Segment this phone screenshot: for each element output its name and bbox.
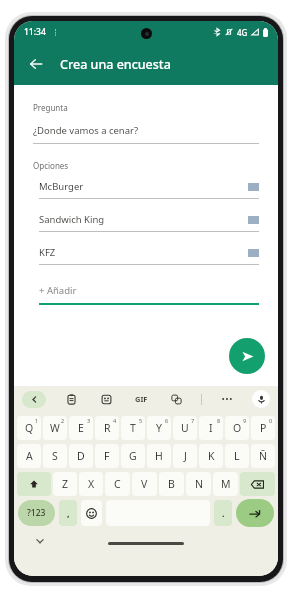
- button[interactable]: + Añadir: [39, 284, 259, 305]
- staticText: 4: [113, 417, 117, 424]
- button[interactable]: GIF: [131, 390, 151, 408]
- button[interactable]: D: [69, 444, 93, 468]
- button[interactable]: Sandwich King: [39, 213, 259, 246]
- button[interactable]: Mayúsculas: [17, 472, 51, 496]
- staticText: W: [50, 421, 60, 435]
- button[interactable]: T: [121, 416, 145, 440]
- staticText: 9: [243, 417, 247, 424]
- staticText: 7: [191, 417, 195, 424]
- button[interactable]: Traducir: [166, 390, 186, 408]
- staticText: X: [88, 477, 95, 491]
- staticText: 2: [61, 417, 65, 424]
- button[interactable]: S: [43, 444, 67, 468]
- staticText: 3: [87, 417, 91, 424]
- staticText: 0: [269, 417, 273, 424]
- button[interactable]: Ocultar teclado: [32, 533, 48, 549]
- staticText: Ñ: [259, 449, 267, 463]
- staticText: ,: [67, 507, 70, 519]
- button[interactable]: O: [225, 416, 249, 440]
- button[interactable]: Emoji: [81, 500, 102, 526]
- button[interactable]: McBurger: [39, 180, 259, 213]
- button[interactable]: V: [132, 472, 157, 496]
- button[interactable]: H: [147, 444, 171, 468]
- staticText: L: [234, 449, 240, 463]
- staticText: K: [208, 449, 215, 463]
- staticText: N: [195, 477, 203, 491]
- button[interactable]: F: [95, 444, 119, 468]
- button[interactable]: K: [199, 444, 223, 468]
- staticText: Crea una encuesta: [60, 56, 171, 73]
- button[interactable]: Atrás: [22, 50, 50, 78]
- button[interactable]: Dictado por voz: [252, 390, 270, 408]
- button[interactable]: Stickers: [96, 390, 116, 408]
- staticText: Opciones: [33, 160, 69, 171]
- staticText: O: [233, 421, 242, 435]
- staticText: R: [104, 421, 111, 435]
- staticText: 1: [35, 417, 39, 424]
- staticText: T: [130, 421, 136, 435]
- button[interactable]: Intro: [236, 499, 274, 527]
- staticText: S: [52, 449, 58, 463]
- staticText: C: [114, 477, 121, 491]
- staticText: P: [260, 421, 267, 435]
- button[interactable]: J: [173, 444, 197, 468]
- staticText: ¿Donde vamos a cenar?: [33, 124, 139, 137]
- button[interactable]: Atrás en barra: [22, 391, 46, 408]
- staticText: I: [209, 421, 213, 435]
- button[interactable]: X: [79, 472, 103, 496]
- staticText: GIF: [135, 394, 148, 404]
- button[interactable]: N: [186, 472, 211, 496]
- button[interactable]: R: [95, 416, 119, 440]
- button[interactable]: B: [159, 472, 184, 496]
- staticText: J: [184, 449, 187, 463]
- staticText: Y: [156, 421, 162, 435]
- staticText: Z: [62, 477, 69, 491]
- staticText: 5: [139, 417, 143, 424]
- staticText: .: [222, 507, 225, 519]
- staticText: McBurger: [39, 180, 84, 193]
- button[interactable]: I: [199, 416, 223, 440]
- staticText: 6: [165, 417, 169, 424]
- button[interactable]: Q: [17, 416, 41, 440]
- staticText: KFZ: [39, 246, 56, 259]
- button[interactable]: P: [251, 416, 275, 440]
- staticText: U: [181, 421, 189, 435]
- button[interactable]: Enviar encuesta: [229, 338, 265, 374]
- button[interactable]: Más opciones: [217, 390, 237, 408]
- button[interactable]: KFZ: [39, 246, 259, 279]
- staticText: E: [78, 421, 84, 435]
- button[interactable]: Z: [53, 472, 77, 496]
- staticText: A: [26, 449, 33, 463]
- button[interactable]: L: [225, 444, 249, 468]
- button[interactable]: Portapapeles: [61, 390, 81, 408]
- staticText: D: [77, 449, 85, 463]
- button[interactable]: Y: [147, 416, 171, 440]
- staticText: Sandwich King: [39, 213, 105, 226]
- staticText: 8: [217, 417, 221, 424]
- button[interactable]: Borrar: [240, 472, 275, 496]
- button[interactable]: U: [173, 416, 197, 440]
- button[interactable]: M: [213, 472, 238, 496]
- button[interactable]: W: [43, 416, 67, 440]
- button[interactable]: G: [121, 444, 145, 468]
- button[interactable]: ?123: [18, 500, 55, 526]
- button[interactable]: A: [17, 444, 41, 468]
- button[interactable]: ,: [59, 500, 77, 526]
- staticText: ?123: [27, 507, 46, 519]
- staticText: H: [155, 449, 163, 463]
- staticText: B: [168, 477, 175, 491]
- button[interactable]: Ñ: [251, 444, 275, 468]
- staticText: 11:34: [24, 26, 46, 38]
- staticText: V: [141, 477, 148, 491]
- staticText: + Añadir: [39, 284, 77, 297]
- button[interactable]: .: [214, 500, 232, 526]
- staticText: Pregunta: [33, 102, 68, 113]
- staticText: M: [221, 477, 231, 491]
- button[interactable]: C: [105, 472, 130, 496]
- staticText: 4G: [237, 27, 248, 38]
- button[interactable]: E: [69, 416, 93, 440]
